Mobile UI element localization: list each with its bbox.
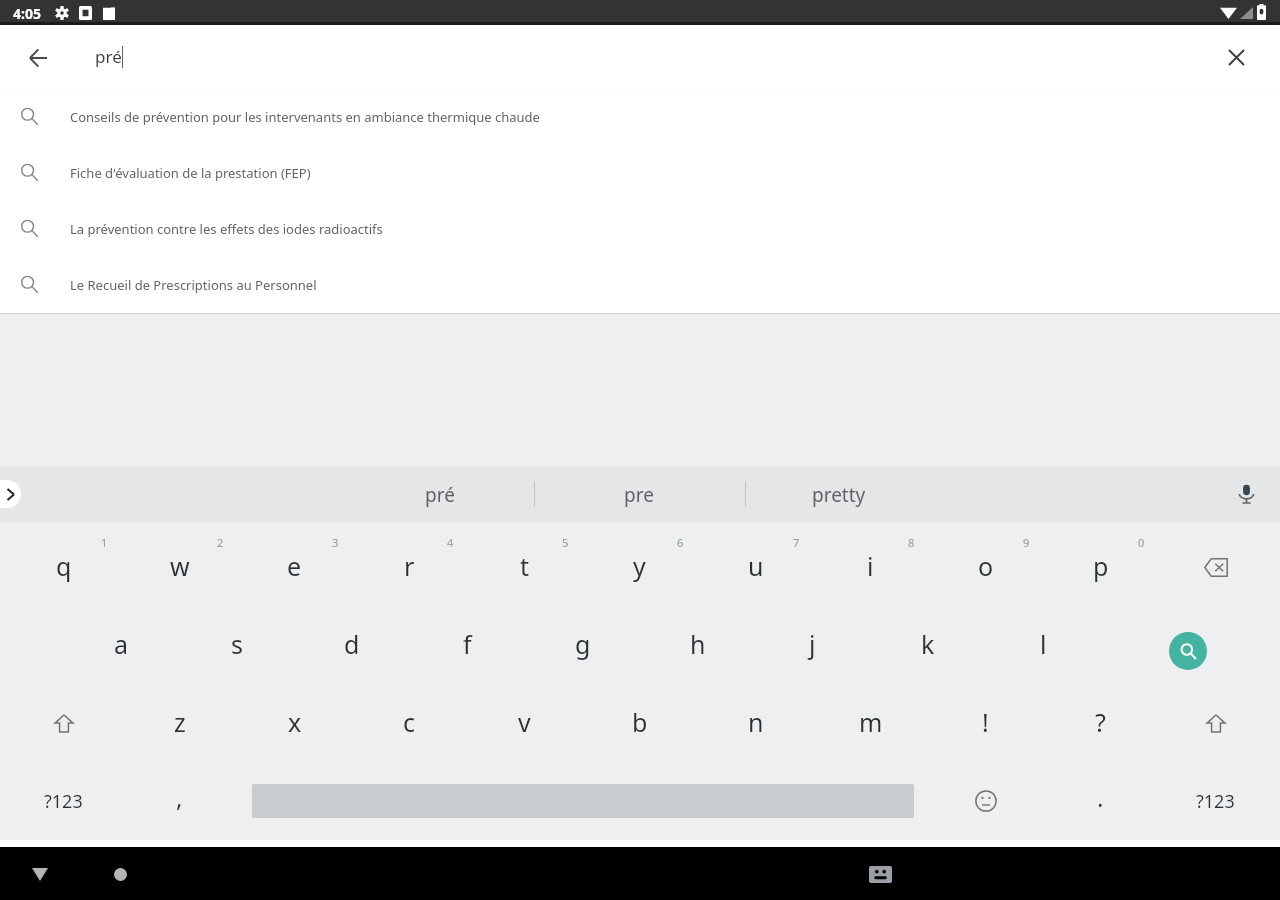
staticText: k [921, 627, 935, 661]
button[interactable]: Space [237, 762, 928, 840]
button[interactable]: Shift [1158, 684, 1273, 762]
button[interactable]: ? [1043, 684, 1158, 762]
button[interactable]: p [1043, 528, 1158, 606]
button[interactable]: Fiche d'évaluation de la prestation (FEP… [0, 146, 1280, 202]
button[interactable]: y [582, 528, 697, 606]
button[interactable]: m [813, 684, 928, 762]
staticText: a [114, 627, 129, 661]
button[interactable]: Back [16, 850, 64, 898]
staticText: w [170, 549, 190, 583]
button[interactable]: r [352, 528, 467, 606]
staticText: ? [1095, 705, 1106, 739]
staticText: o [978, 549, 994, 583]
staticText: Conseils de prévention pour les interven… [70, 108, 540, 126]
staticText: f [463, 627, 472, 661]
button[interactable]: Home [96, 850, 144, 898]
button[interactable]: La prévention contre les effets des iode… [0, 202, 1280, 258]
staticText: q [56, 549, 72, 583]
staticText: pré [95, 45, 122, 68]
button[interactable]: ! [928, 684, 1043, 762]
button[interactable]: b [582, 684, 697, 762]
button[interactable]: Comma [122, 762, 237, 840]
button[interactable]: pre [564, 466, 714, 522]
button[interactable]: o [928, 528, 1043, 606]
button[interactable]: More suggestions [0, 480, 21, 508]
staticText: 1 [101, 535, 108, 550]
staticText: 2 [217, 535, 224, 550]
staticText: ?123 [44, 789, 83, 814]
button[interactable]: l [986, 606, 1101, 684]
button[interactable]: e [237, 528, 352, 606]
button[interactable]: t [467, 528, 582, 606]
staticText: pré [425, 482, 455, 508]
button[interactable]: Shift [6, 684, 121, 762]
button[interactable]: Backspace [1158, 528, 1273, 606]
staticText: pre [624, 482, 654, 508]
button[interactable]: n [698, 684, 813, 762]
staticText: 6 [677, 535, 684, 550]
button[interactable]: Le Recueil de Prescriptions au Personnel [0, 258, 1280, 314]
staticText: Fiche d'évaluation de la prestation (FEP… [70, 164, 311, 182]
button[interactable]: Back [14, 34, 62, 82]
button[interactable]: Period [1043, 762, 1158, 840]
staticText: m [859, 705, 883, 739]
button[interactable]: d [294, 606, 409, 684]
staticText: r [404, 549, 415, 583]
staticText: 4 [447, 535, 454, 550]
staticText: v [518, 705, 531, 739]
button[interactable]: j [755, 606, 870, 684]
staticText: t [520, 549, 530, 583]
staticText: . [1097, 781, 1104, 814]
button[interactable]: g [525, 606, 640, 684]
button[interactable]: Voice input [1226, 474, 1266, 514]
staticText: j [809, 627, 816, 661]
staticText: c [403, 705, 416, 739]
button[interactable]: a [64, 606, 179, 684]
button[interactable]: v [467, 684, 582, 762]
button[interactable]: q [6, 528, 121, 606]
button[interactable]: i [813, 528, 928, 606]
staticText: p [1093, 549, 1109, 583]
staticText: La prévention contre les effets des iode… [70, 220, 383, 238]
button[interactable]: k [870, 606, 985, 684]
button[interactable]: h [640, 606, 755, 684]
staticText: 9 [1023, 535, 1030, 550]
staticText: n [748, 705, 764, 739]
staticText: y [633, 549, 646, 583]
staticText: 7 [793, 535, 800, 550]
staticText: i [867, 549, 874, 583]
staticText: 5 [562, 535, 569, 550]
staticText: 0 [1138, 535, 1145, 550]
staticText: Le Recueil de Prescriptions au Personnel [70, 276, 317, 294]
button[interactable]: Symbols [1158, 762, 1273, 840]
staticText: x [288, 705, 302, 739]
button[interactable]: c [352, 684, 467, 762]
button[interactable]: Search [1101, 606, 1274, 684]
button[interactable]: f [410, 606, 525, 684]
staticText: b [632, 705, 648, 739]
staticText: d [344, 627, 360, 661]
button[interactable]: x [237, 684, 352, 762]
button[interactable]: s [179, 606, 294, 684]
button[interactable]: pré [365, 466, 515, 522]
staticText: z [174, 705, 186, 739]
staticText: l [1040, 627, 1047, 661]
staticText: ! [982, 705, 989, 739]
staticText: pretty [812, 482, 866, 508]
staticText: s [231, 627, 243, 661]
button[interactable]: Symbols [6, 762, 121, 840]
staticText: 8 [908, 535, 915, 550]
button[interactable]: w [122, 528, 237, 606]
button[interactable]: z [122, 684, 237, 762]
button[interactable]: pretty [764, 466, 914, 522]
button[interactable]: Switch keyboard [856, 850, 904, 898]
staticText: 3 [332, 535, 339, 550]
staticText: 4:05 [13, 4, 41, 23]
staticText: h [690, 627, 706, 661]
button[interactable]: Emoji [928, 762, 1043, 840]
button[interactable]: Conseils de prévention pour les interven… [0, 90, 1280, 146]
staticText: ?123 [1196, 789, 1235, 814]
staticText: e [287, 549, 302, 583]
button[interactable]: Clear search [1212, 33, 1260, 81]
button[interactable]: u [698, 528, 813, 606]
